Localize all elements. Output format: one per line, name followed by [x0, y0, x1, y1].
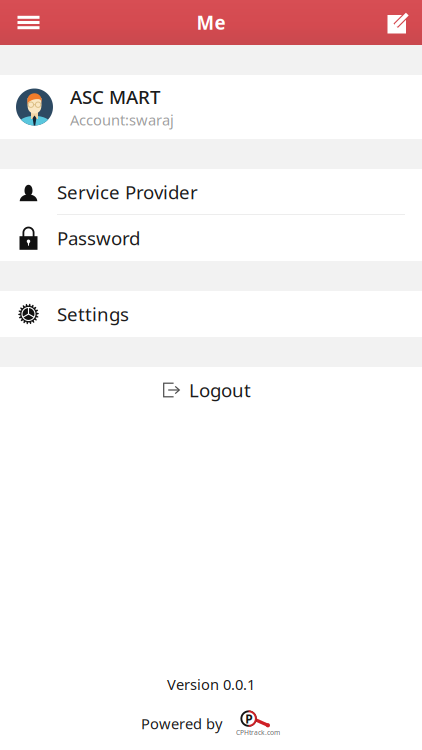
staticText: Powered by — [141, 714, 222, 733]
button[interactable]: Password — [0, 215, 422, 261]
staticText: P — [245, 711, 252, 727]
button[interactable]: Menu — [0, 0, 57, 45]
button[interactable]: Service Provider — [0, 169, 422, 215]
staticText: CPHtrack.com — [236, 728, 280, 737]
staticText: Logout — [189, 378, 251, 402]
staticText: Account:swaraj — [70, 110, 174, 130]
button[interactable]: Settings — [0, 291, 422, 337]
staticText: Service Provider — [57, 180, 198, 204]
staticText: Password — [57, 226, 140, 250]
button[interactable]: Logout — [0, 367, 422, 413]
staticText: ASC MART — [70, 84, 160, 109]
staticText: Me — [196, 10, 225, 35]
staticText: Version 0.0.1 — [167, 674, 255, 694]
button[interactable]: ASC MART — [0, 75, 422, 139]
button[interactable]: Compose — [375, 0, 422, 45]
staticText: Settings — [57, 302, 129, 326]
